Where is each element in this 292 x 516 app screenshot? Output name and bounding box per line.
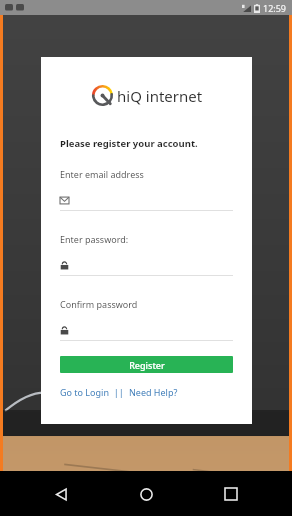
button[interactable]: Register	[60, 356, 233, 373]
staticText: Need Help?	[129, 386, 178, 398]
staticText: Register	[129, 359, 165, 371]
button[interactable]: Confirm password	[60, 324, 233, 337]
staticText: Enter email address	[60, 168, 144, 180]
staticText: Please register your account.	[60, 137, 198, 150]
button[interactable]: Enter email address	[60, 194, 233, 207]
button[interactable]: Back	[44, 477, 78, 511]
staticText: hiQ internet	[117, 86, 203, 106]
button[interactable]: Home	[129, 477, 163, 511]
staticText: Confirm password	[60, 298, 138, 310]
button[interactable]: Go to Login	[60, 386, 109, 398]
staticText: 12:59	[263, 2, 287, 14]
button[interactable]: Recent apps	[214, 477, 248, 511]
button[interactable]: Need Help?	[129, 386, 178, 398]
staticText: Go to Login	[60, 386, 109, 398]
staticText: ||	[109, 386, 129, 398]
button[interactable]: Enter password:	[60, 259, 233, 272]
staticText: Enter password:	[60, 233, 129, 245]
